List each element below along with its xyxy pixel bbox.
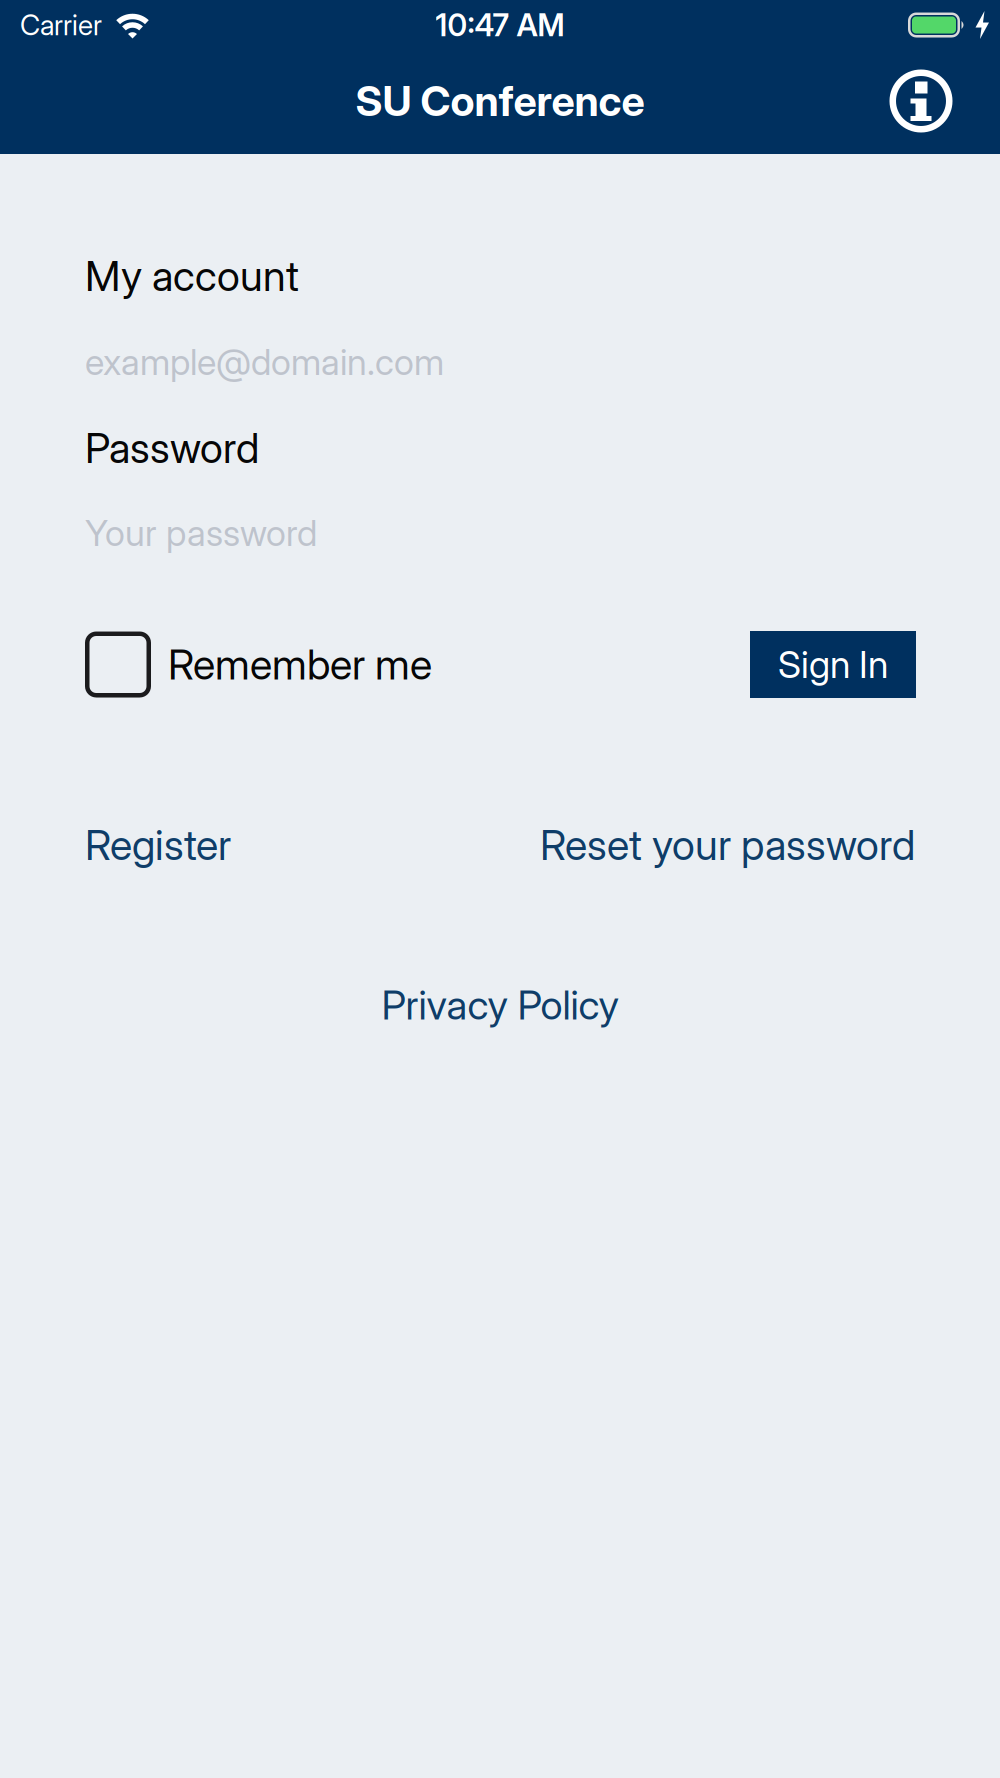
staticText: My account [85,252,299,300]
staticText: Password [85,424,259,472]
button[interactable]: Privacy Policy [381,981,618,1029]
button[interactable]: Remember me [85,631,432,697]
staticText: 10:47 AM [435,7,564,43]
button[interactable]: Register [85,821,231,869]
staticText: Reset your password [540,821,915,869]
staticText: example@domain.com [85,341,444,383]
button[interactable] [889,69,952,132]
button[interactable]: Sign In [750,631,916,698]
staticText: Sign In [778,642,888,686]
staticText: Register [85,821,231,869]
staticText: Remember me [168,640,432,689]
staticText: Privacy Policy [381,981,618,1029]
staticText: Your password [85,512,317,554]
button[interactable]: example@domain.com [85,327,915,397]
button[interactable]: Reset your password [540,821,915,869]
staticText: Carrier [20,8,102,41]
staticText: SU Conference [355,77,644,125]
button[interactable]: Your password [85,498,915,568]
